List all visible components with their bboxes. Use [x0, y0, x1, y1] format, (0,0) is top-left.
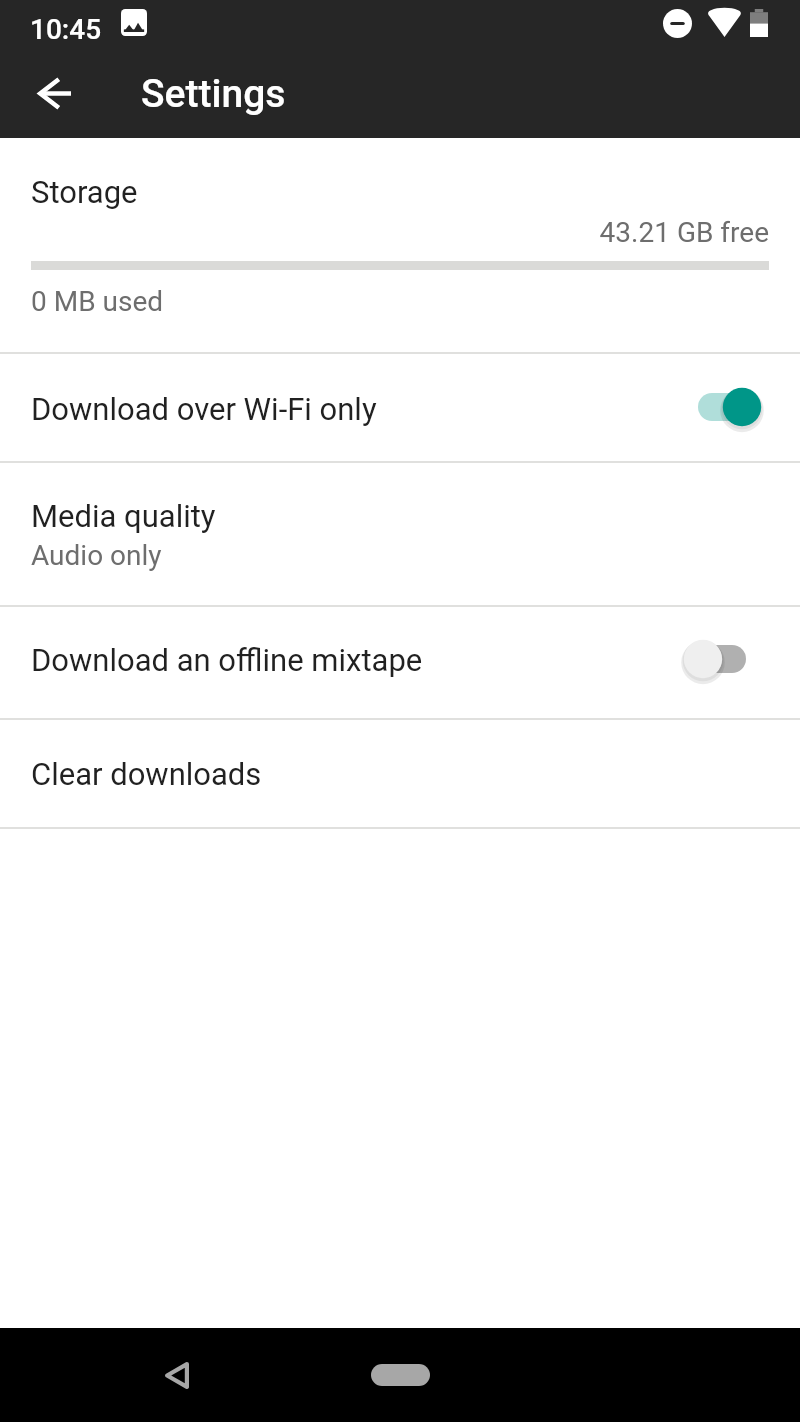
staticText: Settings: [141, 71, 286, 117]
staticText: Media quality: [31, 498, 216, 534]
staticText: Download an offline mixtape: [31, 642, 423, 678]
staticText: 0 MB used: [31, 285, 164, 318]
button[interactable]: Clear downloads: [0, 720, 800, 827]
button[interactable]: Storage: [0, 138, 800, 352]
button[interactable]: Download over Wi-Fi only: [0, 354, 800, 461]
button[interactable]: Download an offline mixtape: [0, 607, 800, 718]
button[interactable]: Media quality: [0, 463, 800, 605]
staticText: Clear downloads: [31, 756, 262, 792]
staticText: Storage: [31, 174, 138, 210]
staticText: Audio only: [31, 539, 162, 572]
staticText: 43.21 GB free: [0, 216, 769, 249]
staticText: Download over Wi-Fi only: [31, 391, 377, 427]
button[interactable]: Navigate up: [22, 61, 87, 126]
button[interactable]: Download an offline mixtape, off: [678, 633, 762, 685]
staticText: 10:45: [30, 13, 102, 46]
button[interactable]: Back: [147, 1345, 207, 1405]
button[interactable]: Home: [355, 1345, 445, 1405]
button[interactable]: Download over Wi-Fi only, on: [688, 381, 772, 433]
